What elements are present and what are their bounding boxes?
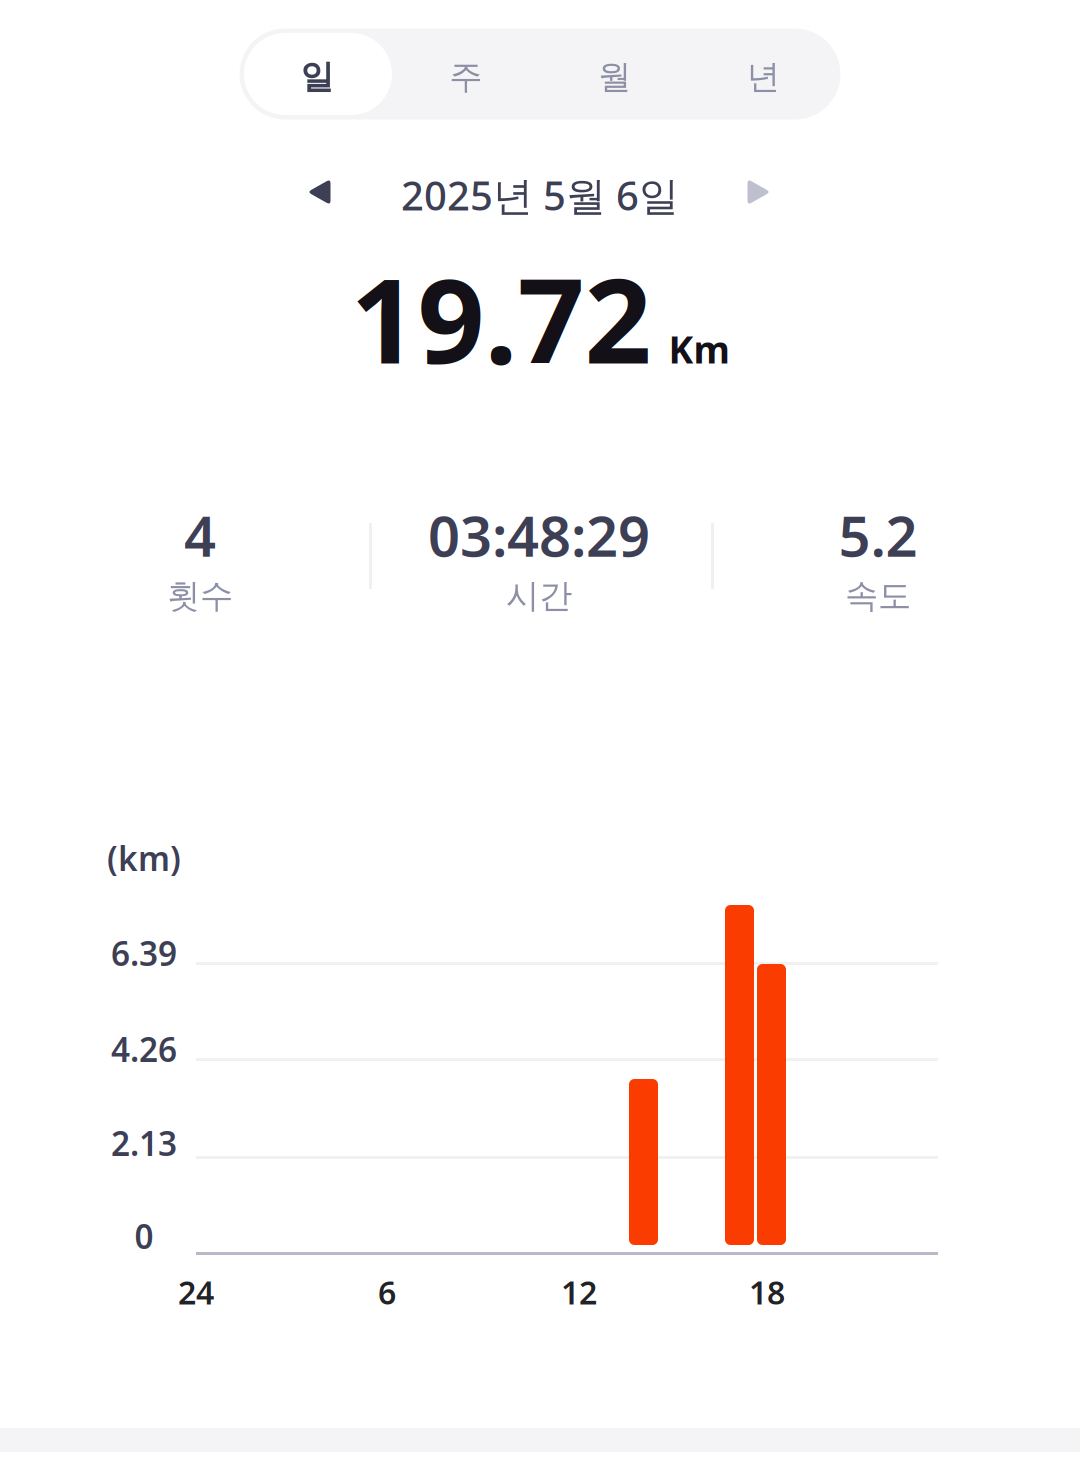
staticText: 일	[300, 56, 333, 97]
staticText: 시간	[506, 575, 572, 616]
staticText: 12	[561, 1271, 597, 1313]
button[interactable]: Next day	[721, 154, 797, 230]
button[interactable]: 년	[689, 28, 838, 119]
staticText: 2025년 5월 6일	[401, 168, 679, 221]
staticText: 속도	[845, 575, 911, 616]
staticText: 4	[184, 498, 216, 572]
staticText: 03:48:29	[428, 498, 650, 572]
staticText: 24	[178, 1271, 214, 1313]
staticText: 6.39	[111, 931, 177, 975]
staticText: 6	[378, 1271, 396, 1313]
staticText: 년	[747, 56, 780, 97]
staticText: 19.72	[350, 240, 651, 396]
button[interactable]: 주	[391, 28, 540, 119]
staticText: 횟수	[167, 575, 233, 616]
button[interactable]: 월	[540, 28, 689, 119]
staticText: 월	[598, 56, 631, 97]
staticText: 18	[749, 1271, 785, 1313]
staticText: 주	[449, 56, 482, 97]
staticText: 5.2	[838, 498, 917, 572]
staticText: 2.13	[111, 1121, 177, 1165]
button[interactable]: 일	[242, 28, 391, 119]
button[interactable]: Previous day	[281, 154, 357, 230]
staticText: (km)	[107, 836, 181, 880]
staticText: Km	[668, 324, 729, 374]
staticText: 0	[134, 1214, 153, 1258]
staticText: 4.26	[111, 1027, 177, 1071]
